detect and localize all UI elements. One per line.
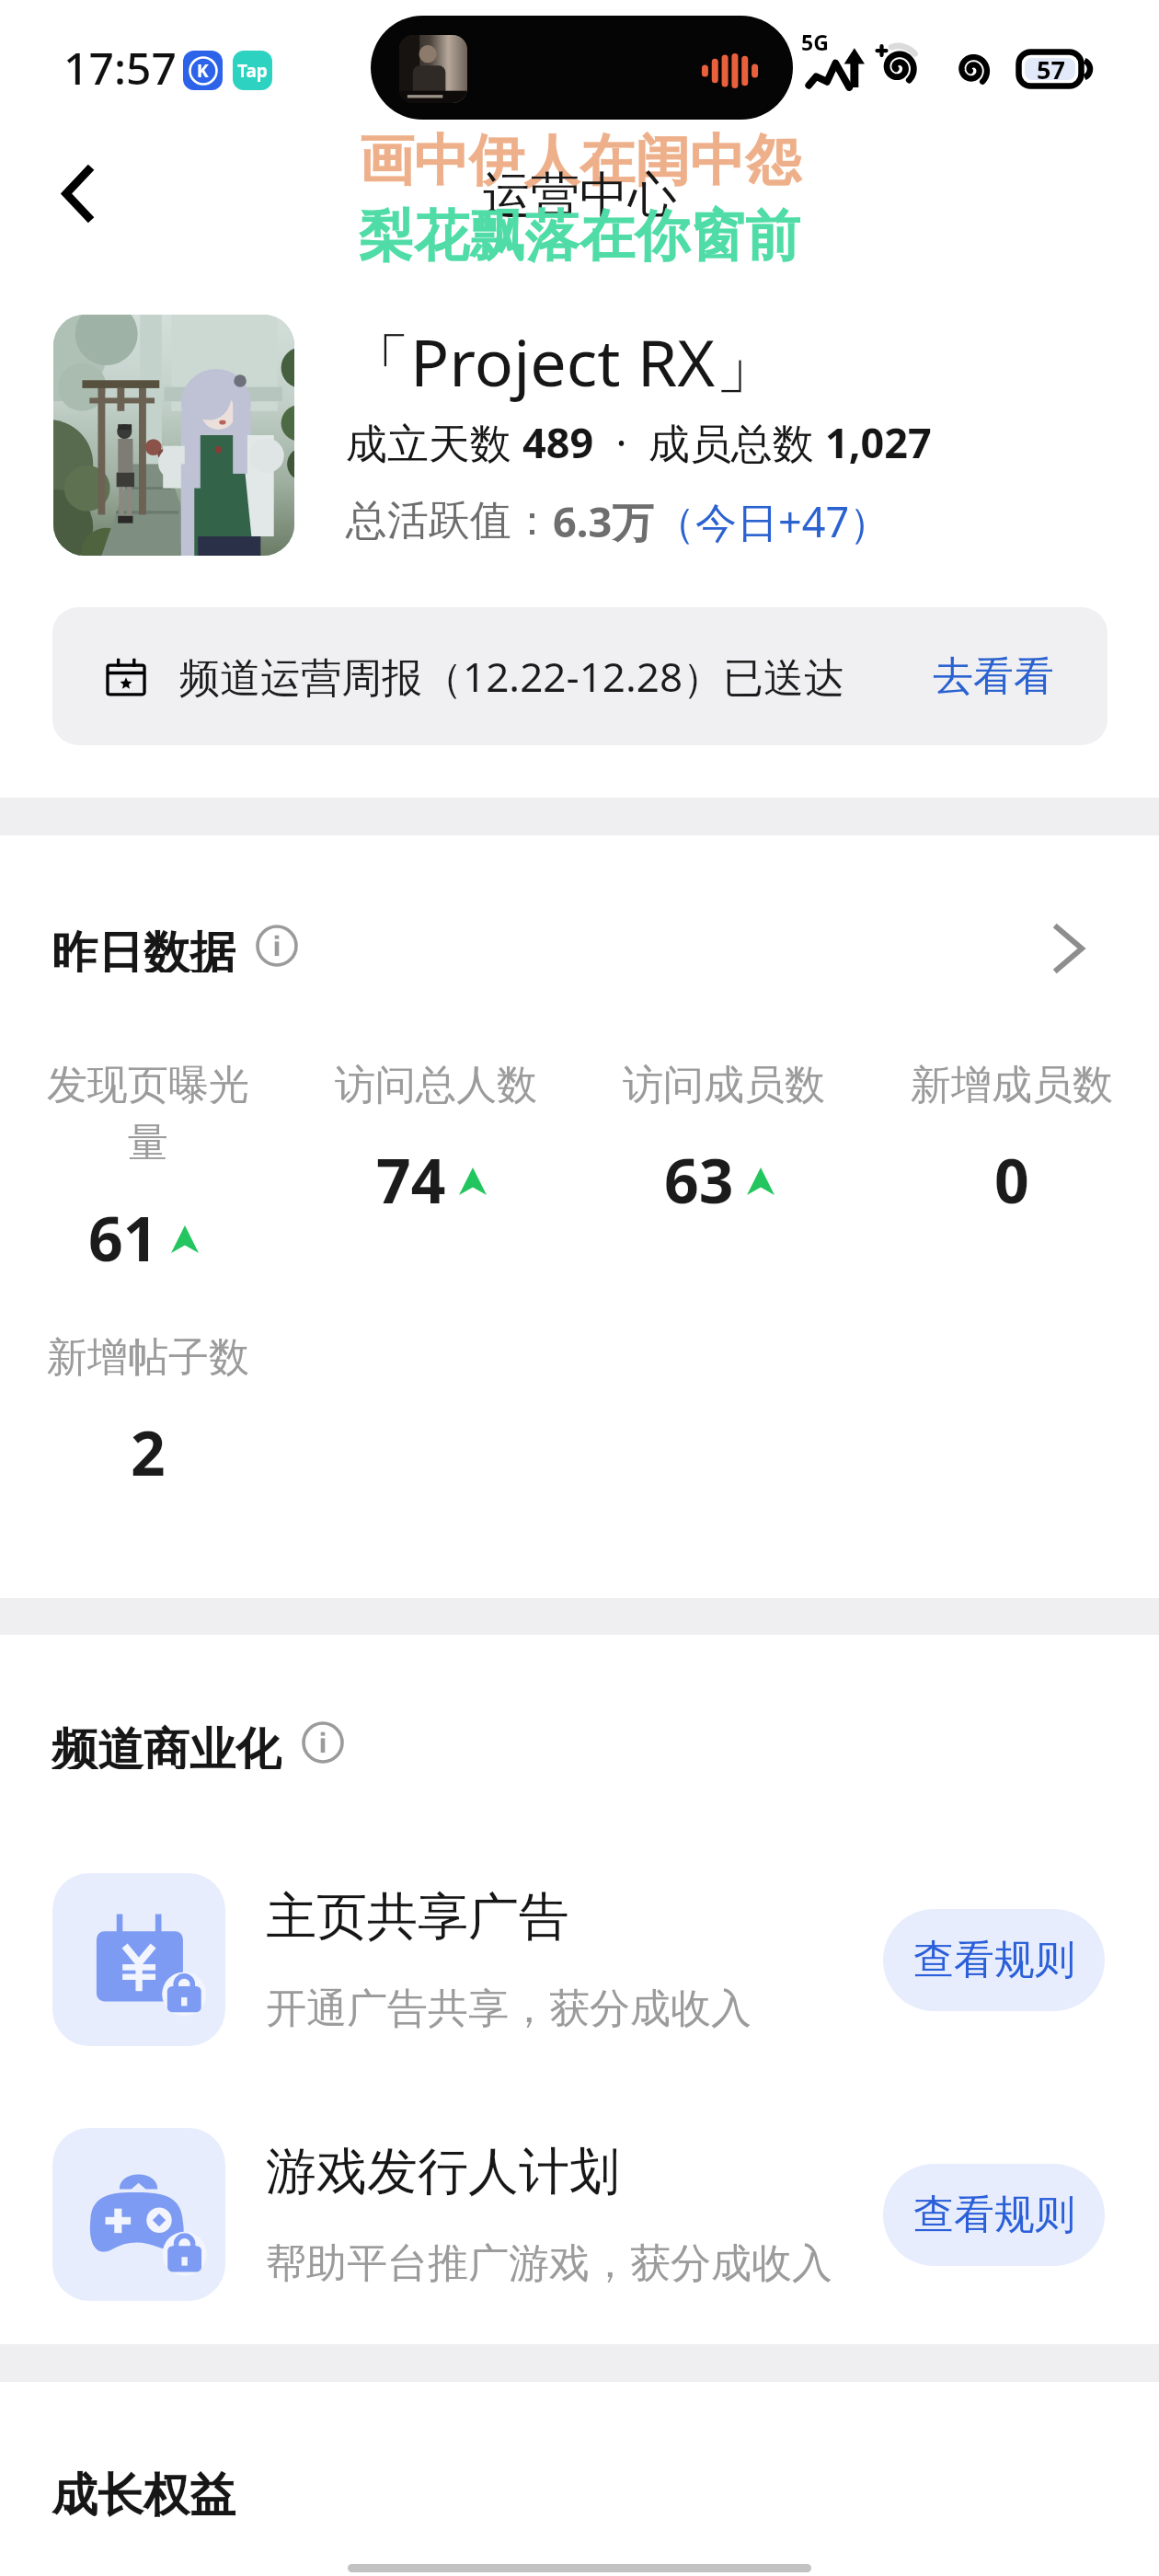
staticText: 主页共享广告 (266, 1885, 569, 1949)
staticText: 总活跃值： (346, 495, 553, 547)
staticText: 发现页曝光量 (41, 1060, 255, 1168)
staticText: 梨花飘落在你窗前 (359, 201, 800, 271)
staticText: 画中伊人在闺中怨 (359, 126, 800, 196)
staticText: 61 (88, 1196, 158, 1279)
button[interactable]: 主页共享广告 (52, 1873, 1105, 2046)
staticText: 489 (522, 414, 594, 470)
staticText: 成长权益 (52, 2467, 235, 2524)
button[interactable]: More (1037, 925, 1101, 972)
button[interactable]: 去看看 (933, 607, 1054, 745)
staticText: 访问总人数 (329, 1060, 543, 1110)
staticText: · (594, 414, 648, 470)
staticText: （今日+47） (654, 493, 891, 549)
staticText: 昨日数据 (52, 925, 235, 972)
staticText: 运营中心 (482, 165, 677, 226)
staticText: 57 (1037, 52, 1065, 86)
staticText: 成员总数 (648, 414, 825, 470)
staticText: 频道运营周报（12.22-12.28）已送达 (179, 649, 845, 704)
staticText: 频道商业化 (52, 1721, 281, 1769)
staticText: 新增帖子数 (41, 1332, 255, 1383)
staticText: 成立天数 (346, 414, 522, 470)
staticText: 2 (131, 1410, 166, 1493)
staticText: 新增成员数 (905, 1060, 1119, 1110)
staticText: 访问成员数 (617, 1060, 831, 1110)
staticText: 去看看 (933, 651, 1054, 702)
staticText: 游戏发行人计划 (266, 2140, 620, 2203)
staticText: 5G (801, 28, 829, 56)
button[interactable]: 查看规则 (883, 1909, 1105, 2011)
button[interactable]: 频道运营周报（12.22-12.28）已送达 (52, 607, 1107, 745)
staticText: 查看规则 (913, 2190, 1075, 2240)
staticText: 帮助平台推广游戏，获分成收入 (266, 2238, 832, 2289)
button[interactable]: 查看规则 (883, 2164, 1105, 2266)
staticText: 开通广告共享，获分成收入 (266, 1984, 752, 2034)
staticText: 0 (994, 1138, 1029, 1221)
staticText: 「Project RX」 (346, 317, 780, 406)
button[interactable]: Channel avatar (53, 315, 294, 556)
button[interactable]: 游戏发行人计划 (52, 2128, 1105, 2301)
button[interactable]: Back (22, 138, 132, 248)
staticText: Tap (237, 59, 268, 83)
staticText: K (197, 59, 209, 83)
staticText: 1,027 (825, 414, 932, 470)
staticText: 17:57 (63, 38, 177, 98)
staticText: 6.3万 (553, 493, 654, 549)
staticText: 63 (664, 1138, 734, 1221)
staticText: 74 (376, 1138, 446, 1221)
staticText: 查看规则 (913, 1935, 1075, 1985)
